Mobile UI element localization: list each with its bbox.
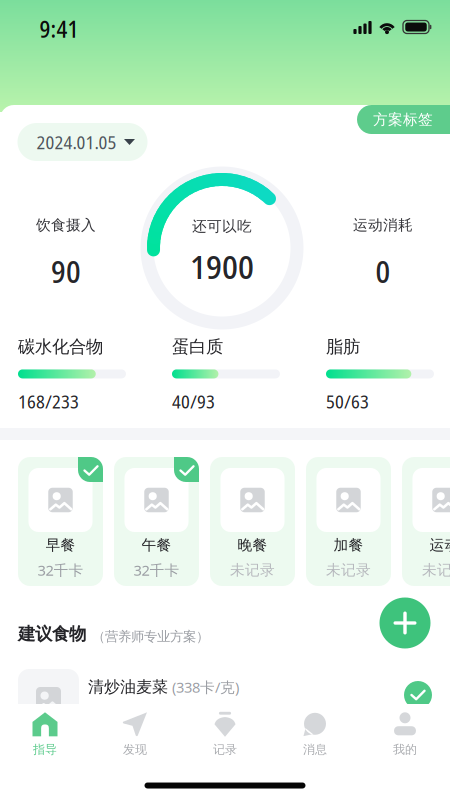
- staticText: 饮食摄入: [36, 216, 96, 234]
- staticText: （营养师专业方案）: [92, 628, 209, 645]
- staticText: 未记录: [230, 561, 275, 579]
- staticText: 清炒油麦菜: [88, 677, 168, 697]
- staticText: 午餐: [141, 536, 171, 554]
- button[interactable]: 加餐: [306, 457, 391, 586]
- button[interactable]: 午餐: [114, 457, 199, 586]
- staticText: 运动消耗: [353, 216, 413, 234]
- button[interactable]: 运动: [402, 457, 450, 586]
- staticText: (338卡/克): [172, 677, 239, 697]
- staticText: 发现: [123, 742, 147, 757]
- staticText: 还可以吃: [192, 217, 252, 235]
- staticText: 32千卡: [133, 560, 179, 580]
- staticText: 加餐: [333, 536, 363, 554]
- staticText: 未记录: [422, 561, 450, 579]
- staticText: 32千卡: [37, 560, 83, 580]
- staticText: 9:41: [39, 14, 78, 44]
- button[interactable]: 记录: [180, 704, 270, 762]
- button[interactable]: 指导: [0, 704, 90, 762]
- button[interactable]: 清炒油麦菜: [0, 669, 450, 731]
- staticText: 建议食物: [18, 623, 86, 645]
- staticText: 1900: [190, 243, 254, 289]
- staticText: 2024.01.05: [36, 129, 116, 155]
- staticText: 消息: [303, 742, 327, 757]
- staticText: 脂肪: [326, 336, 360, 357]
- staticText: 0: [375, 250, 390, 292]
- staticText: 168/233: [18, 388, 79, 414]
- staticText: 运动: [429, 536, 450, 554]
- staticText: 晚餐: [237, 536, 267, 554]
- button[interactable]: 早餐: [18, 457, 103, 586]
- staticText: 碳水化合物: [18, 336, 103, 357]
- staticText: 40/93: [172, 388, 215, 414]
- button[interactable]: 我的: [360, 704, 450, 762]
- button[interactable]: 方案标签: [357, 105, 450, 134]
- button[interactable]: 晚餐: [210, 457, 295, 586]
- button[interactable]: 2024.01.05: [17, 123, 147, 161]
- staticText: 蛋白质: [172, 336, 223, 357]
- staticText: 记录: [213, 742, 237, 757]
- button[interactable]: 发现: [90, 704, 180, 762]
- button[interactable]: Add: [379, 597, 430, 648]
- staticText: 50/63: [326, 388, 369, 414]
- staticText: 未记录: [326, 561, 371, 579]
- staticText: 方案标签: [373, 110, 433, 128]
- staticText: 我的: [393, 742, 417, 757]
- staticText: 90: [51, 250, 81, 292]
- staticText: 指导: [33, 742, 57, 757]
- staticText: 早餐: [45, 536, 75, 554]
- button[interactable]: 消息: [270, 704, 360, 762]
